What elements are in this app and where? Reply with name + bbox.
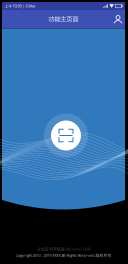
staticText: Copyright 2013 - 2019 XXXX All Rights Re…: [15, 253, 111, 258]
staticText: 企业证书手机版 Version 1.0.0: [37, 246, 90, 252]
staticText: 功能主页面: [48, 15, 78, 23]
staticText: 上午10:09 | 0.8K/s: [4, 3, 35, 9]
button[interactable]: Scan: [42, 111, 90, 159]
button[interactable]: Account: [111, 10, 125, 28]
